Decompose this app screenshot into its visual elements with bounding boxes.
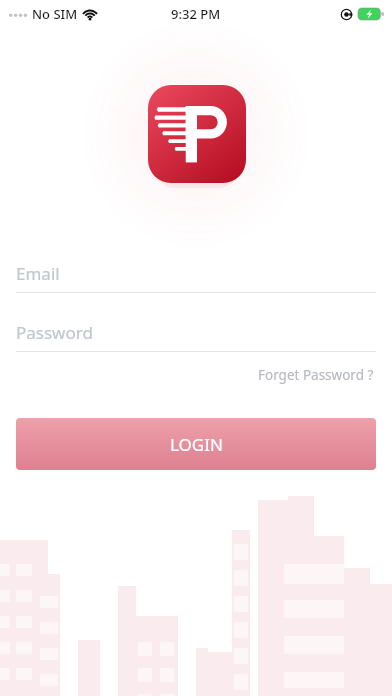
staticText: No SIM xyxy=(32,5,78,23)
staticText: 9:32 PM xyxy=(171,5,221,23)
button[interactable]: LOGIN xyxy=(16,418,376,470)
other: App logo xyxy=(148,85,246,183)
staticText: Password xyxy=(16,321,93,344)
button[interactable]: Email xyxy=(16,260,376,293)
staticText: Email xyxy=(16,262,60,285)
staticText: LOGIN xyxy=(170,433,223,456)
staticText: Forget Password ? xyxy=(258,366,374,384)
button[interactable]: Forget Password ? xyxy=(256,362,376,388)
button[interactable]: Password xyxy=(16,319,376,352)
